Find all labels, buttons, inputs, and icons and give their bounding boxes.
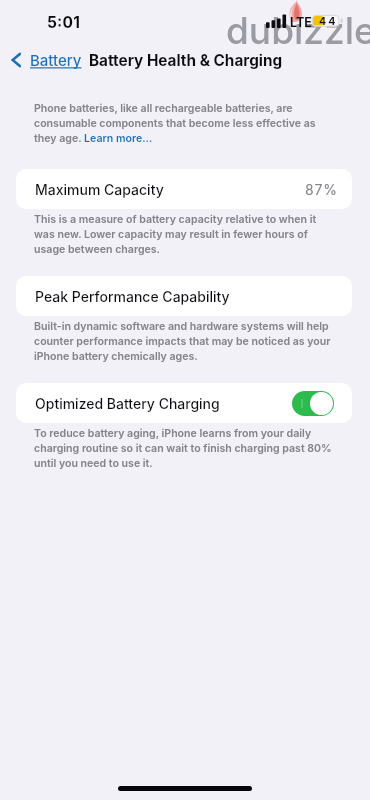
staticText: dubizzle [226,8,370,53]
staticText: Battery Health & Charging [89,51,283,70]
other: Back to Battery [10,52,22,68]
staticText: Phone batteries, like all rechargeable b… [34,102,333,145]
staticText: 87% [305,181,338,198]
staticText: 5:01 [47,13,81,32]
staticText: Battery [30,51,82,69]
button[interactable]: Maximum Capacity [16,169,352,209]
button[interactable]: Optimized Battery Charging [16,383,352,423]
staticText: Maximum Capacity [35,181,164,198]
button[interactable]: Optimized Battery Charging, on [292,391,334,416]
staticText: To reduce battery aging, iPhone learns f… [34,427,333,470]
staticText: 44 [319,15,338,28]
staticText: Built-in dynamic software and hardware s… [34,320,333,363]
button[interactable]: Back to Battery [10,48,82,72]
staticText: This is a measure of battery capacity re… [34,213,333,256]
staticText: Peak Performance Capability [35,288,230,305]
staticText: LTE [290,15,312,30]
button[interactable]: Peak Performance Capability [16,276,352,316]
staticText: Optimized Battery Charging [35,395,220,412]
